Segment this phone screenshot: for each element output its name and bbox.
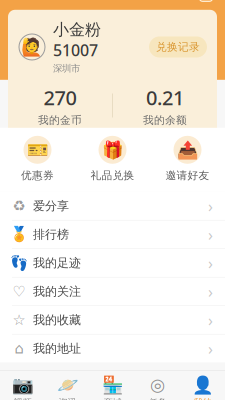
staticText: › [208, 338, 213, 359]
staticText: 小金粉51007 [53, 20, 101, 61]
button[interactable]: 🎁 [75, 136, 150, 182]
button[interactable]: 👤 [180, 375, 225, 400]
staticText: 爱分享 [33, 198, 69, 213]
staticText: 我的 [193, 397, 211, 400]
button[interactable]: ⌂ [0, 334, 225, 362]
staticText: ☆ [12, 312, 25, 328]
staticText: 🎫 [26, 140, 48, 160]
button[interactable]: 🏅 [0, 220, 225, 248]
staticText: 🙋 [21, 37, 43, 57]
staticText: ·· [203, 0, 209, 4]
button[interactable]: ♻︎ [0, 192, 225, 220]
staticText: 📷 [11, 375, 33, 395]
staticText: › [208, 224, 213, 245]
staticText: 👣 [10, 254, 28, 271]
button[interactable]: Messages [195, 0, 217, 6]
staticText: ♡ [12, 283, 25, 300]
staticText: 🎁 [101, 140, 123, 160]
button[interactable]: ☆ [0, 306, 225, 334]
button[interactable]: 🎫 [0, 136, 75, 182]
button[interactable]: 📷 [0, 375, 45, 400]
staticText: 我的收藏 [33, 312, 81, 327]
button[interactable]: 🪐 [45, 375, 90, 400]
staticText: 🪐 [56, 375, 78, 395]
staticText: 商城 [103, 397, 121, 400]
staticText: 我的余额 [143, 114, 187, 127]
button[interactable]: ◎ [135, 375, 180, 400]
staticText: › [208, 309, 213, 330]
staticText: 🏅 [10, 226, 28, 243]
staticText: 我的关注 [33, 284, 81, 299]
staticText: 👤 [191, 375, 213, 395]
staticText: 🏪 [101, 375, 123, 395]
staticText: 礼品兑换 [90, 169, 134, 182]
staticText: 资讯 [58, 397, 76, 400]
staticText: 📤 [176, 140, 198, 160]
staticText: 排行榜 [33, 227, 69, 242]
staticText: 邀请好友 [165, 169, 209, 182]
staticText: 深圳市 [53, 63, 80, 74]
staticText: › [208, 281, 213, 302]
staticText: 270 [43, 84, 76, 111]
button[interactable]: 兑换记录 [149, 36, 207, 57]
button[interactable]: 📤 [150, 136, 225, 182]
staticText: 兑换记录 [156, 40, 200, 53]
staticText: 优惠券 [21, 169, 54, 182]
staticText: ♻︎ [12, 198, 25, 214]
staticText: 任务 [148, 397, 166, 400]
staticText: 我的金币 [38, 114, 82, 127]
staticText: ⌂ [14, 340, 23, 357]
staticText: ◎ [150, 375, 165, 395]
staticText: 我的地址 [33, 341, 81, 356]
button[interactable]: ♡ [0, 277, 225, 305]
staticText: › [208, 252, 213, 273]
staticText: 我的足迹 [33, 255, 81, 270]
button[interactable]: 👣 [0, 249, 225, 277]
staticText: › [208, 195, 213, 216]
button[interactable]: 🏪 [90, 375, 135, 400]
staticText: 视频 [13, 397, 31, 400]
staticText: 0.21 [146, 84, 184, 111]
